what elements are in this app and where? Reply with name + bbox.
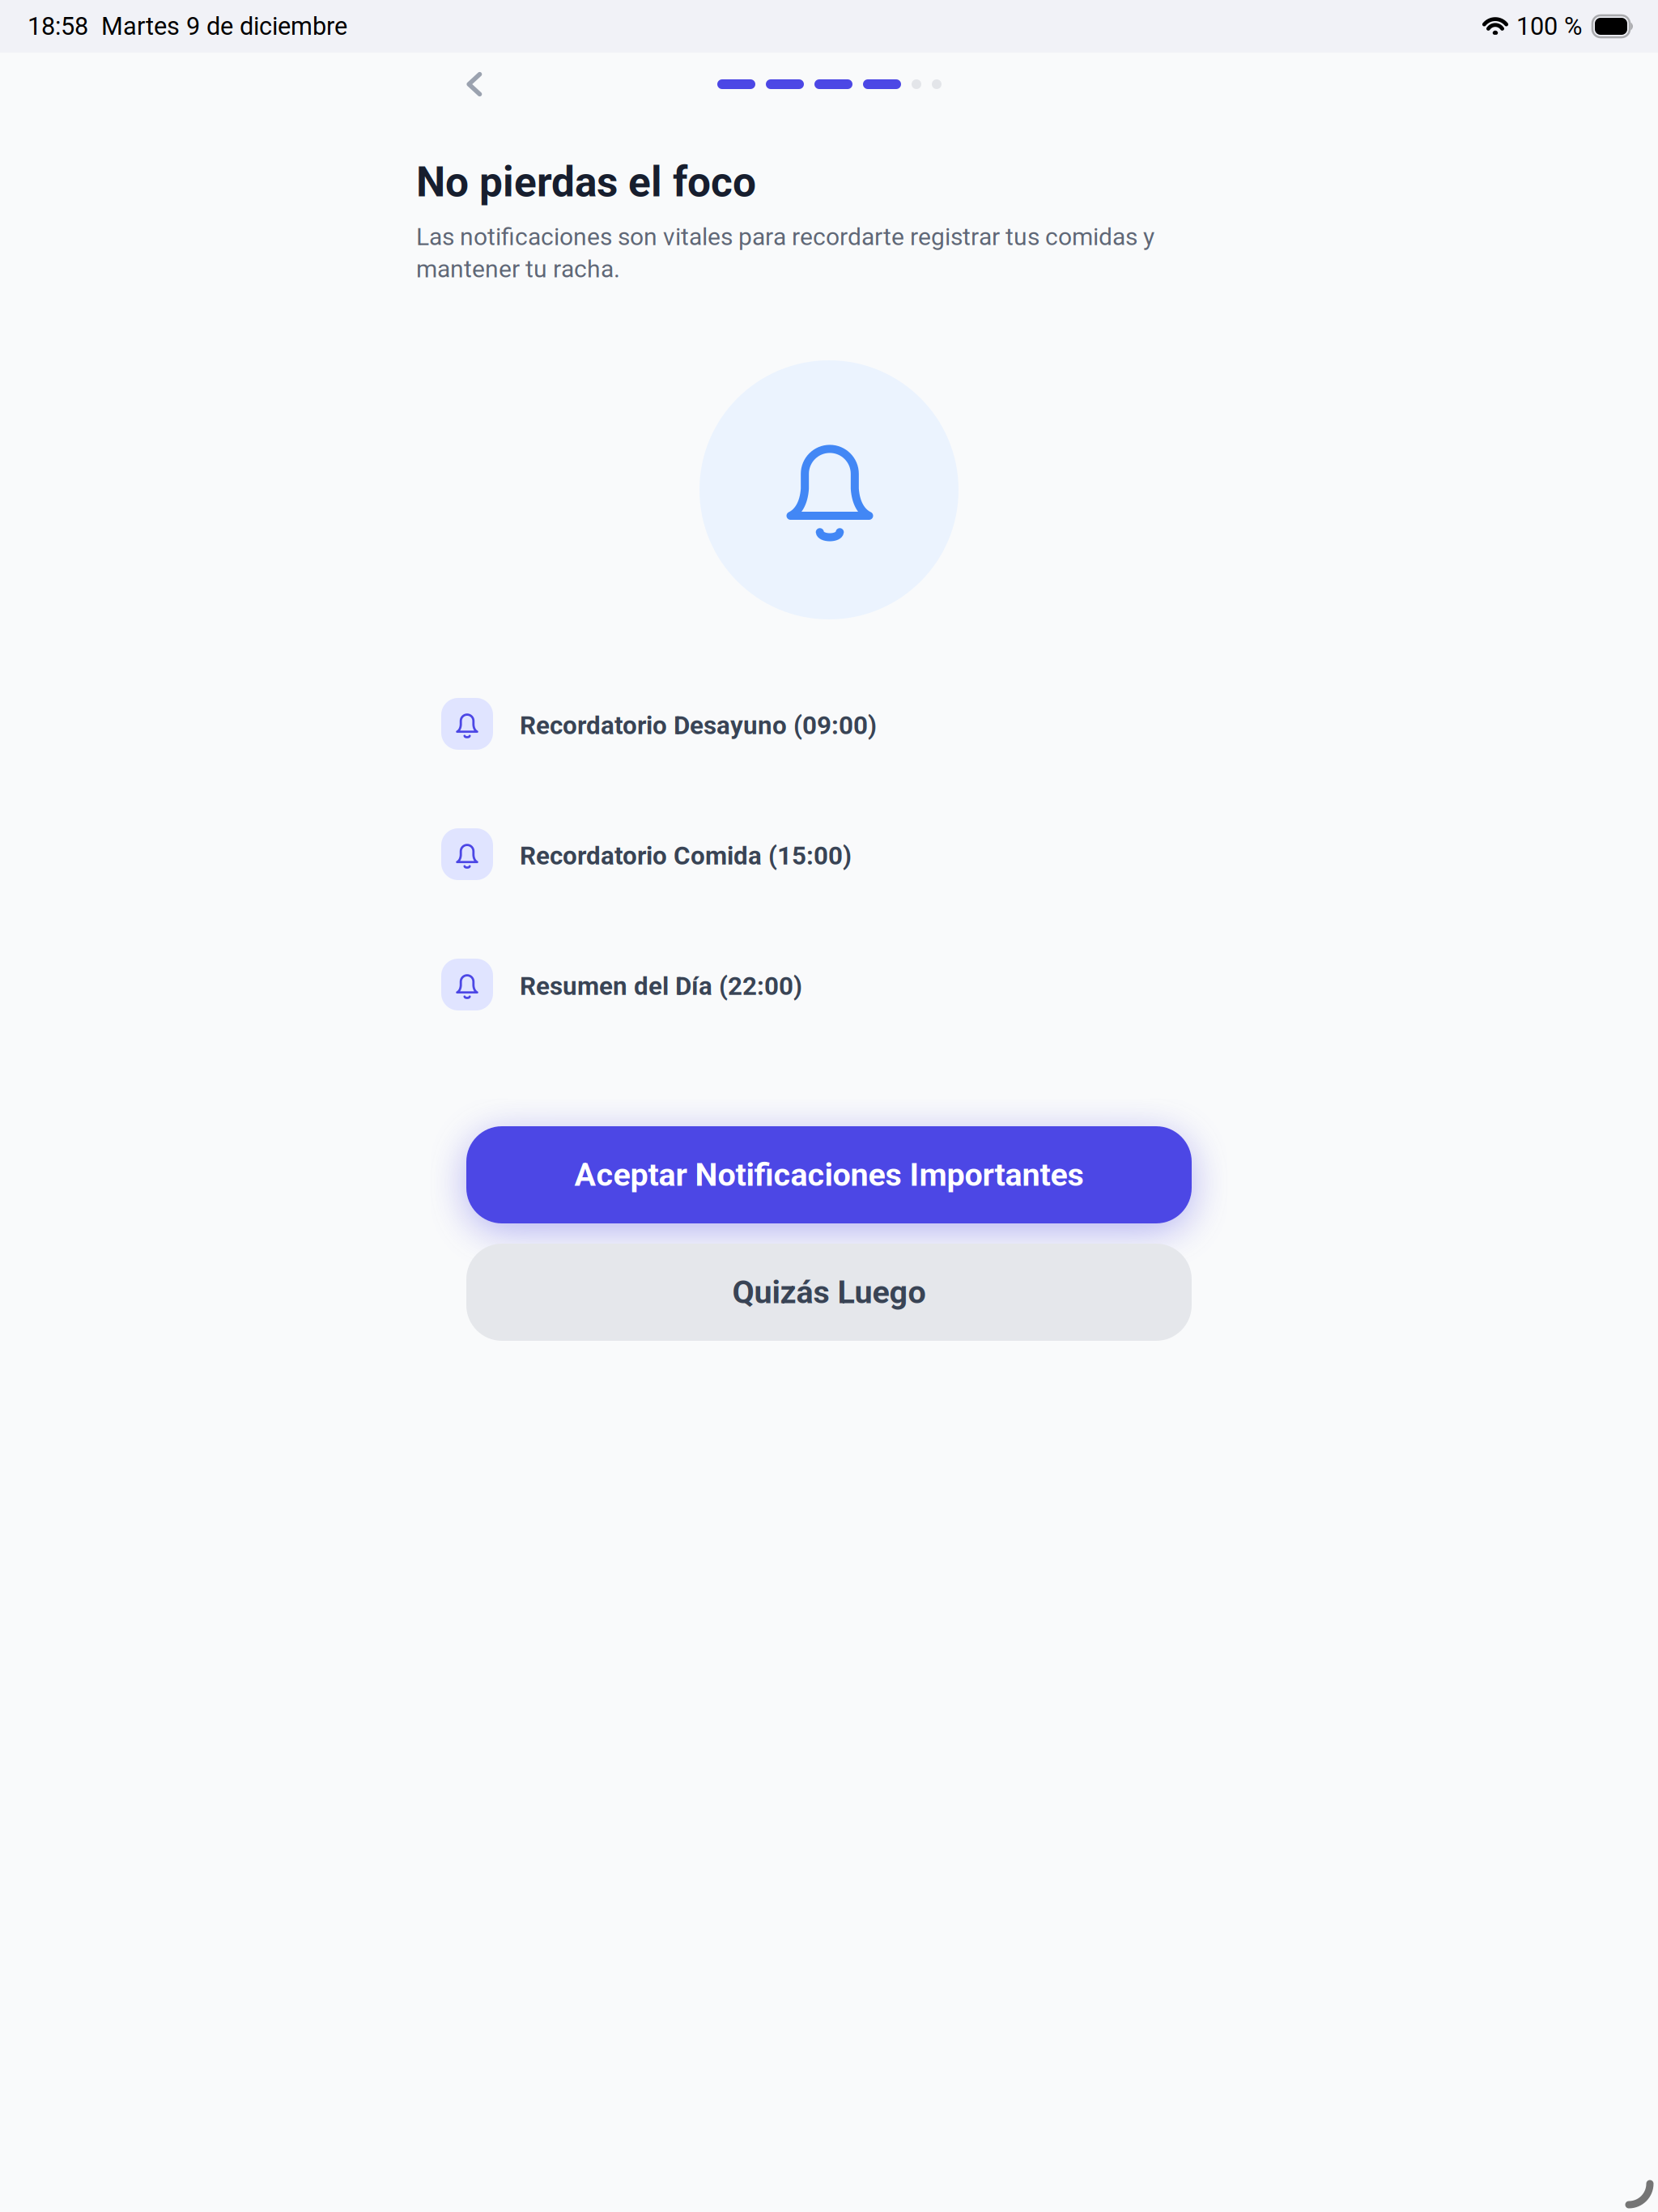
button[interactable]: Aceptar Notificaciones Importantes bbox=[466, 1126, 1192, 1223]
button[interactable]: Back bbox=[449, 58, 500, 110]
staticText: Aceptar Notificaciones Importantes bbox=[574, 1156, 1084, 1194]
staticText: Recordatorio Comida (15:00) bbox=[520, 841, 852, 871]
staticText: No pierdas el foco bbox=[416, 158, 756, 206]
button[interactable]: Recordatorio Desayuno (09:00) bbox=[441, 698, 1170, 750]
staticText: Quizás Luego bbox=[732, 1274, 926, 1311]
staticText: Resumen del Día (22:00) bbox=[520, 971, 802, 1001]
button[interactable]: Resumen del Día (22:00) bbox=[441, 959, 1170, 1010]
staticText: Las notificaciones son vitales para reco… bbox=[416, 223, 1154, 283]
staticText: 100 % bbox=[1516, 12, 1582, 41]
button[interactable]: Recordatorio Comida (15:00) bbox=[441, 828, 1170, 880]
staticText: 18:58 Martes 9 de diciembre bbox=[28, 12, 347, 41]
button[interactable]: Quizás Luego bbox=[466, 1244, 1192, 1341]
staticText: Recordatorio Desayuno (09:00) bbox=[520, 711, 877, 740]
